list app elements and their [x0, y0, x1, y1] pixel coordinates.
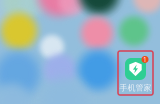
button[interactable]: 手机管家	[118, 51, 153, 95]
staticText: 1	[143, 55, 147, 64]
staticText: 手机管家	[119, 83, 151, 93]
